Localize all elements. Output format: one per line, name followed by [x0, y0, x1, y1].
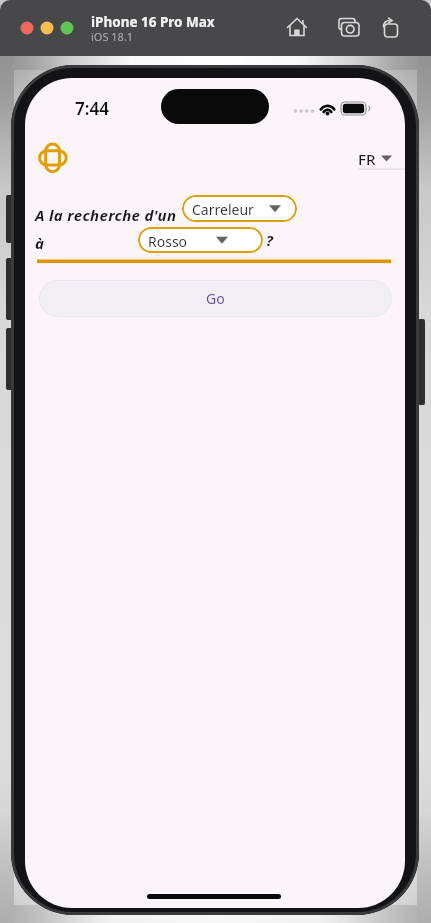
staticText: A la recherche d'un	[35, 205, 177, 225]
staticText: FR	[358, 149, 376, 169]
button[interactable]: FR	[355, 146, 405, 170]
staticText: iOS 18.1	[91, 29, 134, 44]
button[interactable]: Go	[39, 280, 392, 317]
staticText: Go	[206, 289, 225, 308]
staticText: ?	[266, 230, 273, 250]
staticText: 7:44	[75, 97, 109, 120]
staticText: Carreleur	[192, 200, 254, 219]
button[interactable]: Carreleur	[182, 195, 297, 222]
staticText: à	[35, 233, 44, 253]
button[interactable]: Rosso	[138, 227, 263, 253]
staticText: Rosso	[148, 232, 188, 251]
staticText: iPhone 16 Pro Max	[91, 13, 215, 31]
